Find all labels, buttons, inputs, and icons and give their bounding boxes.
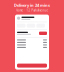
staticText: Home · 12 Park Avenue [15, 9, 48, 12]
button[interactable] [17, 64, 47, 68]
staticText: Delivery in 24 mins [14, 2, 50, 8]
